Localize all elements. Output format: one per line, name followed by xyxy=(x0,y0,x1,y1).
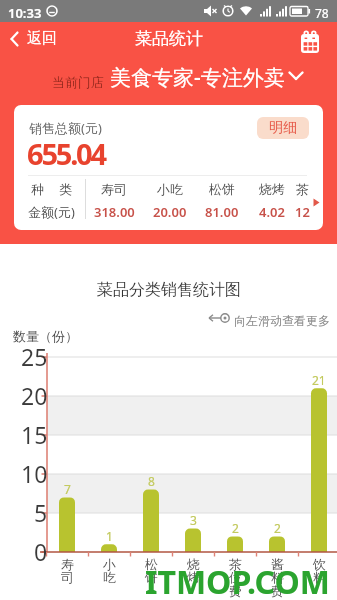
staticText: 金额(元) xyxy=(28,203,75,221)
staticText: 菜品统计 xyxy=(135,28,203,49)
staticText: 0 xyxy=(34,536,48,567)
staticText: 寿司 xyxy=(101,181,127,197)
staticText: 小 吃 xyxy=(103,556,116,586)
staticText: 2 xyxy=(232,520,239,536)
button[interactable]: 当前门店 xyxy=(38,62,213,94)
staticText: 20 xyxy=(21,380,48,411)
staticText: 菜品分类销售统计图 xyxy=(97,280,241,300)
staticText: 类 xyxy=(59,181,72,197)
staticText: 数量（份） xyxy=(13,328,78,344)
staticText: 655.04 xyxy=(27,134,105,173)
staticText: ITMOP.COM xyxy=(145,560,330,600)
staticText: 81.00 xyxy=(205,203,239,221)
staticText: 茶 位 费 xyxy=(229,556,242,600)
button[interactable] xyxy=(296,29,326,59)
staticText: 美食专家-专注外卖 xyxy=(110,63,285,92)
staticText: 松饼 xyxy=(209,181,235,197)
staticText: 向左滑动查看更多 xyxy=(234,313,330,328)
staticText: 10 xyxy=(21,458,48,489)
staticText: 8 xyxy=(148,473,155,489)
staticText: 4.02 xyxy=(259,203,285,221)
staticText: 20.00 xyxy=(153,203,187,221)
button[interactable]: 明细 xyxy=(257,117,309,139)
staticText: 5 xyxy=(34,497,48,528)
staticText: 饮 料 xyxy=(313,556,326,586)
staticText: 种 xyxy=(31,181,44,197)
staticText: 78 xyxy=(315,5,329,21)
staticText: 明细 xyxy=(269,119,297,137)
staticText: 烧 烤 xyxy=(187,556,200,586)
staticText: 318.00 xyxy=(94,203,135,221)
button[interactable]: 返回 xyxy=(4,26,74,54)
staticText: 烧烤 xyxy=(259,181,285,197)
staticText: 酱 料 费 xyxy=(271,556,284,600)
staticText: 25 xyxy=(21,341,48,372)
staticText: 12 xyxy=(295,203,310,221)
staticText: 松 饼 xyxy=(145,556,158,586)
staticText: 10:33 xyxy=(8,4,42,22)
staticText: 小吃 xyxy=(157,181,183,197)
staticText: 返回 xyxy=(27,29,57,48)
staticText: 3 xyxy=(190,512,197,528)
staticText: 15 xyxy=(21,419,48,450)
staticText: 寿 司 xyxy=(61,556,74,586)
staticText: 1 xyxy=(106,528,113,544)
staticText: 当前门店 xyxy=(52,74,104,90)
staticText: 茶 xyxy=(296,181,309,197)
staticText: 21 xyxy=(312,372,326,388)
staticText: 2 xyxy=(274,520,281,536)
staticText: 7 xyxy=(64,481,71,497)
staticText: 销售总额(元) xyxy=(29,119,102,137)
